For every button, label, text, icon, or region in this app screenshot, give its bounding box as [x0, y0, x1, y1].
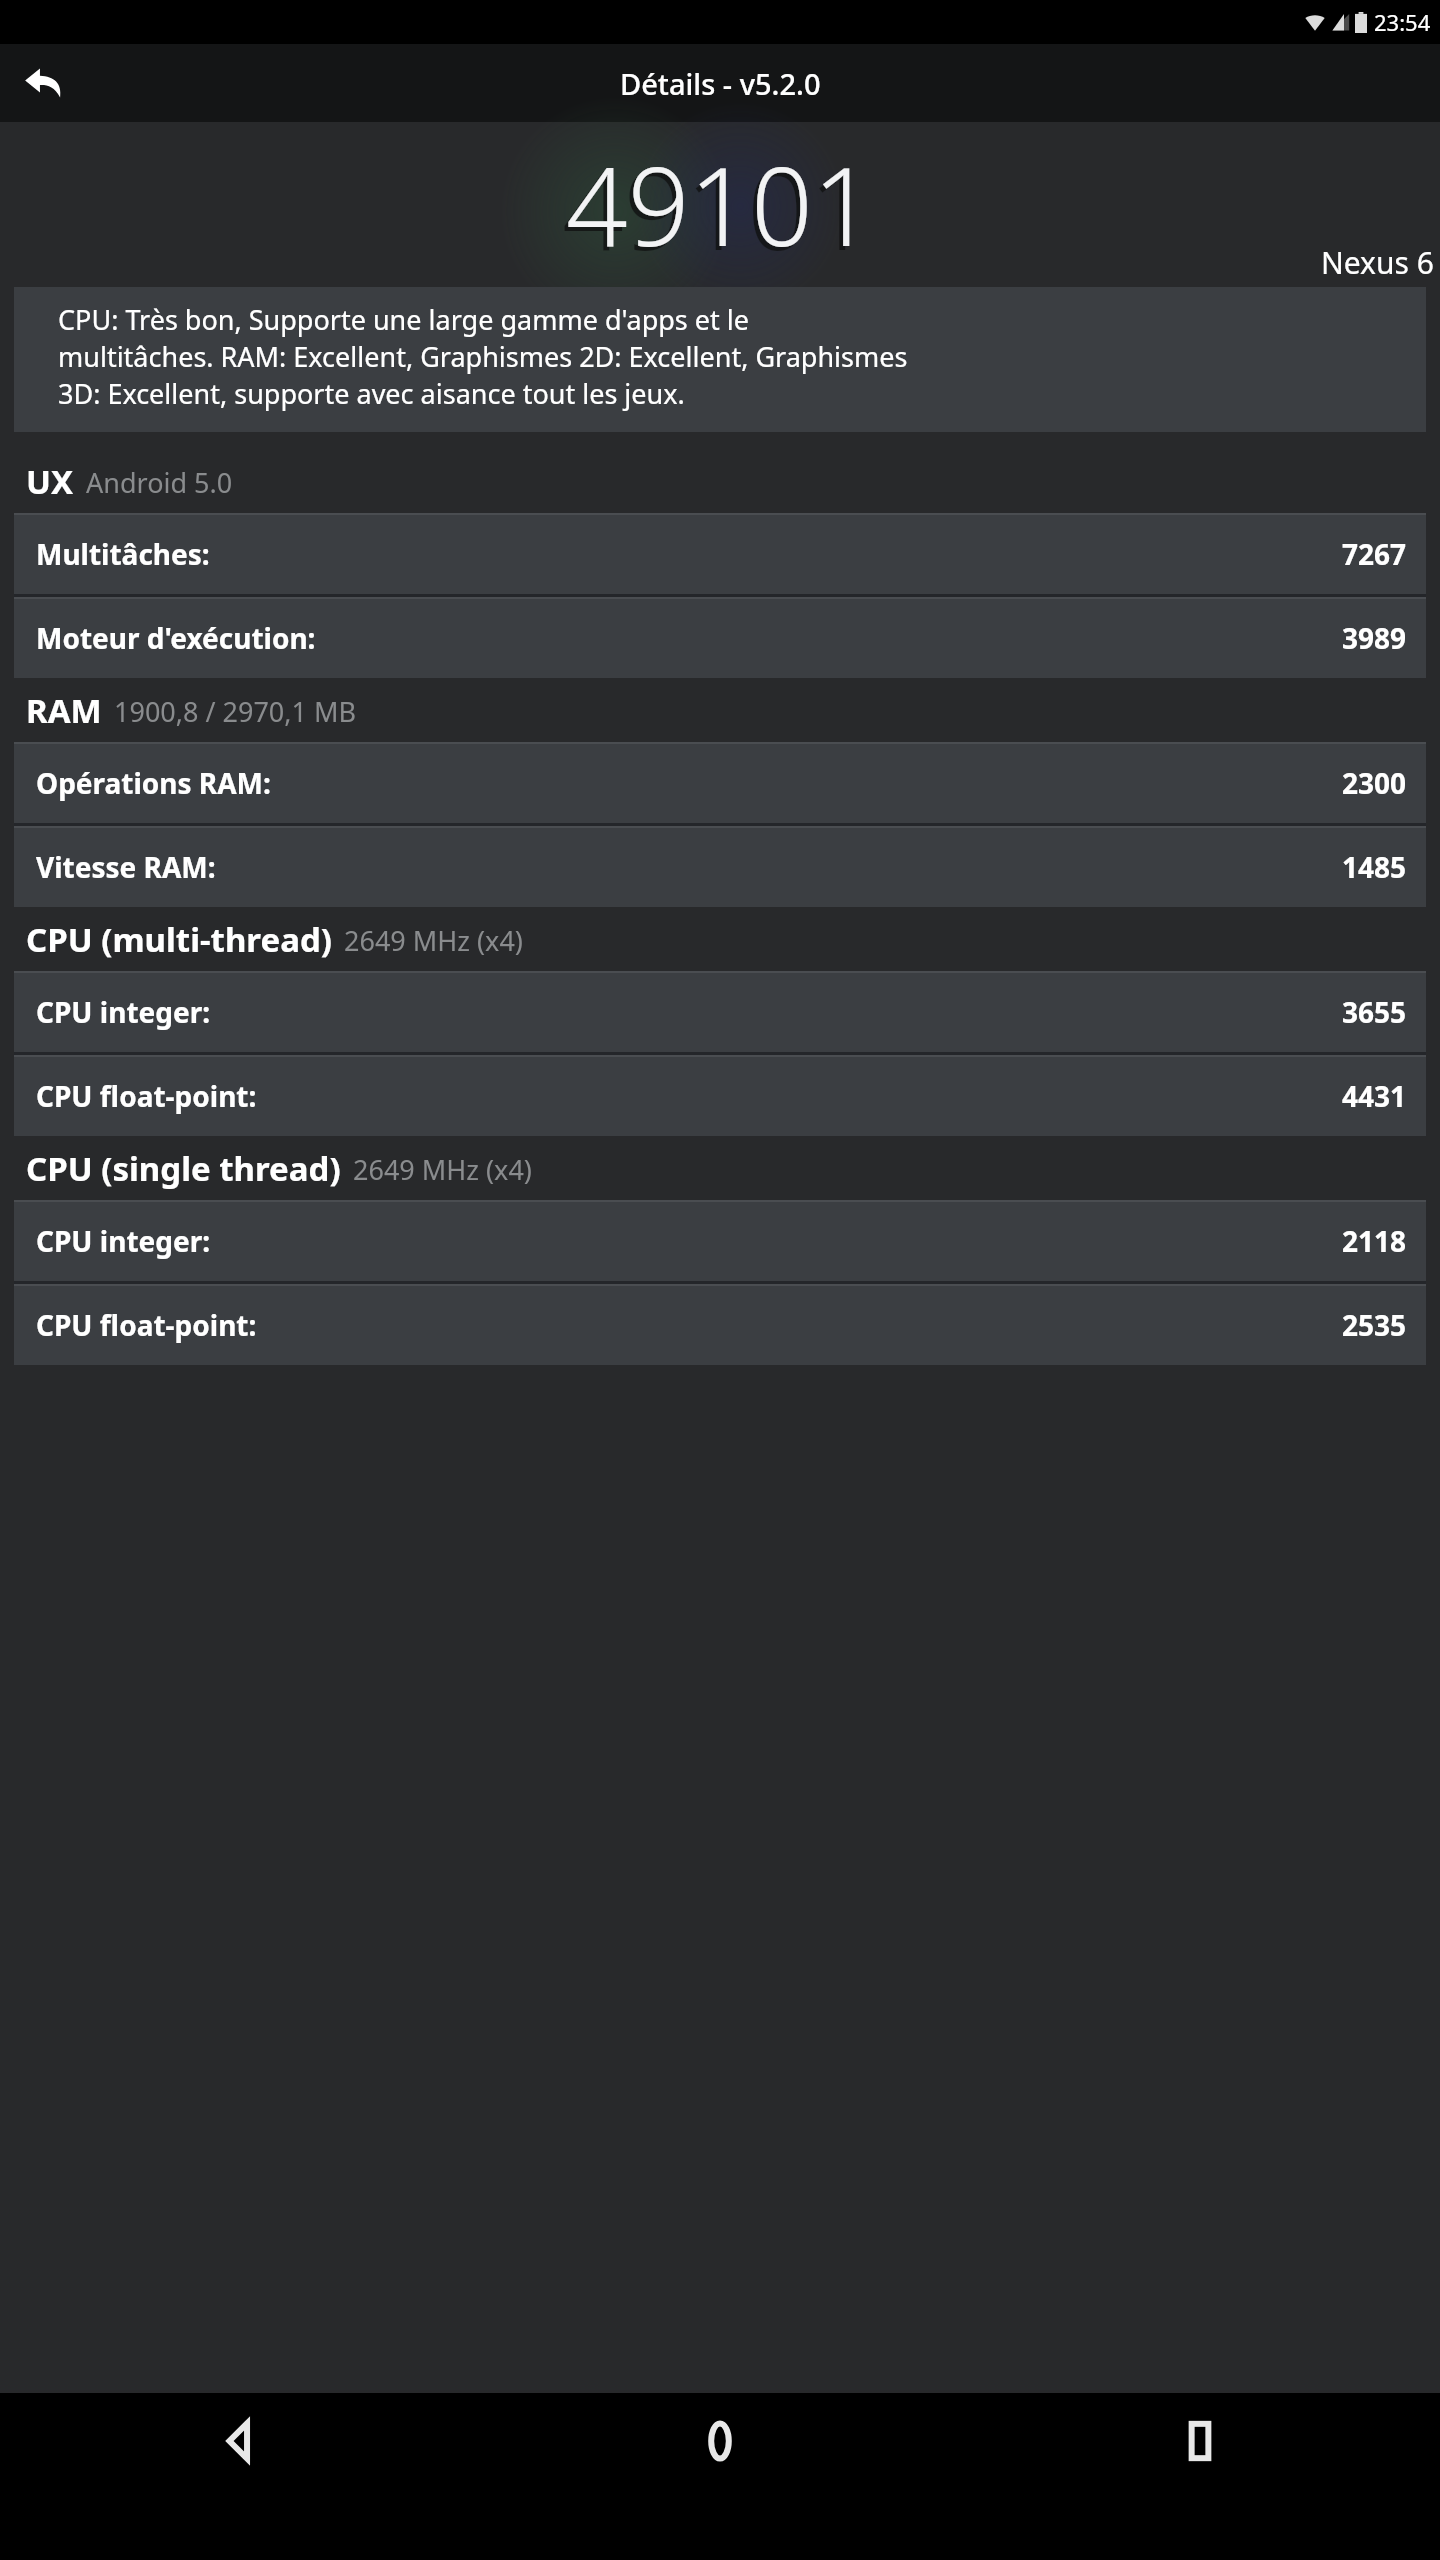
staticText: multitâches. RAM: Excellent, Graphismes … — [58, 338, 908, 375]
staticText: Vitesse RAM: — [36, 848, 216, 886]
button[interactable]: Home — [480, 2393, 960, 2489]
staticText: 49101 — [562, 135, 871, 282]
staticText: CPU (multi-thread) — [26, 917, 332, 962]
staticText: Nexus 6 — [1321, 242, 1434, 283]
staticText: 2649 MHz (x4) — [344, 922, 523, 959]
staticText: CPU integer: — [36, 993, 211, 1031]
button[interactable]: Recents — [960, 2393, 1440, 2489]
button[interactable]: Moteur d'exécution: — [14, 597, 1426, 678]
staticText: Opérations RAM: — [36, 764, 271, 802]
staticText: 2300 — [1341, 764, 1406, 802]
staticText: 2535 — [1341, 1306, 1406, 1344]
button[interactable]: Vitesse RAM: — [14, 826, 1426, 907]
button[interactable]: CPU: Très bon, Supporte une large gamme … — [14, 287, 1426, 432]
staticText: 4431 — [1341, 1077, 1406, 1115]
staticText: Multitâches: — [36, 535, 210, 573]
button[interactable]: CPU integer: — [14, 971, 1426, 1052]
staticText: CPU float-point: — [36, 1077, 257, 1115]
staticText: 2118 — [1341, 1222, 1406, 1260]
button[interactable]: Multitâches: — [14, 513, 1426, 594]
staticText: CPU integer: — [36, 1222, 211, 1260]
button[interactable]: CPU integer: — [14, 1200, 1426, 1281]
staticText: 1900,8 / 2970,1 MB — [114, 693, 357, 730]
staticText: CPU: Très bon, Supporte une large gamme … — [58, 301, 749, 338]
button[interactable]: Back — [0, 2393, 480, 2489]
staticText: CPU float-point: — [36, 1306, 257, 1344]
staticText: 23:54 — [1374, 7, 1431, 37]
staticText: RAM — [26, 688, 102, 733]
staticText: 3989 — [1341, 619, 1406, 657]
staticText: Android 5.0 — [86, 464, 233, 501]
staticText: 3655 — [1341, 993, 1406, 1031]
staticText: 49101 — [566, 131, 875, 278]
staticText: Détails - v5.2.0 — [620, 64, 821, 103]
button[interactable]: CPU float-point: — [14, 1055, 1426, 1136]
button[interactable]: CPU float-point: — [14, 1284, 1426, 1365]
button[interactable]: Back — [10, 50, 76, 116]
staticText: UX — [26, 459, 74, 504]
staticText: 7267 — [1341, 535, 1406, 573]
staticText: Moteur d'exécution: — [36, 619, 316, 657]
button[interactable]: Opérations RAM: — [14, 742, 1426, 823]
staticText: 2649 MHz (x4) — [353, 1151, 532, 1188]
staticText: 3D: Excellent, supporte avec aisance tou… — [58, 375, 685, 412]
staticText: 1485 — [1341, 848, 1406, 886]
staticText: CPU (single thread) — [26, 1146, 341, 1191]
